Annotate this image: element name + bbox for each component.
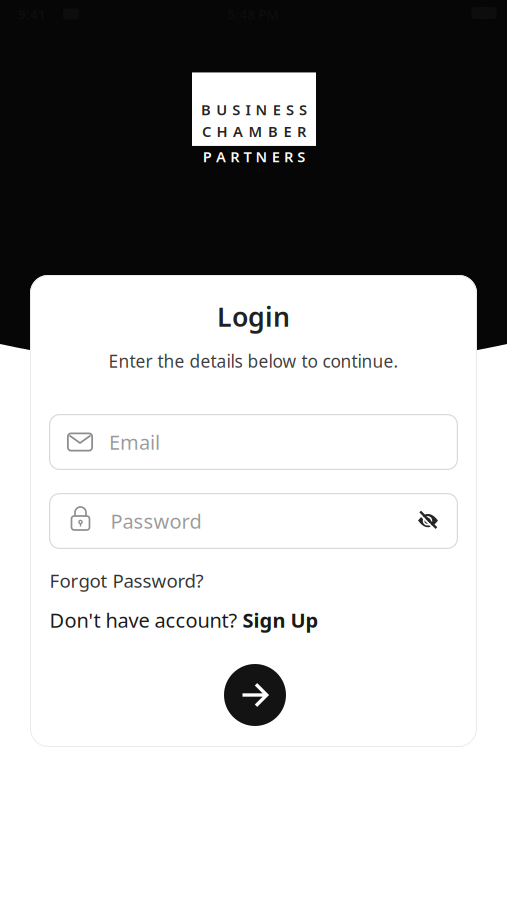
staticText: E	[272, 147, 280, 166]
staticText: P	[203, 147, 212, 166]
staticText: E	[273, 100, 281, 119]
staticText: R	[297, 122, 306, 141]
staticText: R	[284, 147, 293, 166]
button[interactable]: Log in	[224, 664, 286, 726]
staticText: R	[230, 147, 239, 166]
button[interactable]: Show password	[418, 510, 438, 531]
staticText: N	[256, 147, 268, 166]
staticText: A	[216, 147, 226, 166]
staticText: Don't have account? Sign Up	[49, 607, 318, 633]
staticText: U	[216, 100, 227, 119]
button[interactable]: Email	[49, 414, 458, 470]
staticText: S	[286, 100, 294, 119]
staticText: H	[216, 122, 227, 141]
staticText: C	[202, 122, 211, 141]
staticText: Login	[217, 299, 290, 334]
staticText: E	[283, 122, 291, 141]
staticText: Email	[109, 429, 160, 455]
staticText: S	[297, 147, 305, 166]
button[interactable]: Password	[49, 493, 458, 549]
staticText: A	[233, 122, 243, 141]
staticText: B	[268, 122, 278, 141]
staticText: S	[232, 100, 240, 119]
staticText: Forgot Password?	[49, 568, 203, 593]
staticText: Enter the details below to continue.	[108, 349, 398, 372]
button[interactable]: Don't have account? Sign Up	[49, 607, 318, 633]
staticText: Password	[110, 508, 201, 534]
staticText: S	[299, 100, 307, 119]
staticText: N	[256, 100, 268, 119]
staticText: I	[245, 100, 250, 119]
staticText: B	[201, 100, 211, 119]
button[interactable]: Forgot Password?	[49, 568, 203, 593]
staticText: T	[243, 147, 251, 166]
staticText: M	[248, 122, 262, 141]
